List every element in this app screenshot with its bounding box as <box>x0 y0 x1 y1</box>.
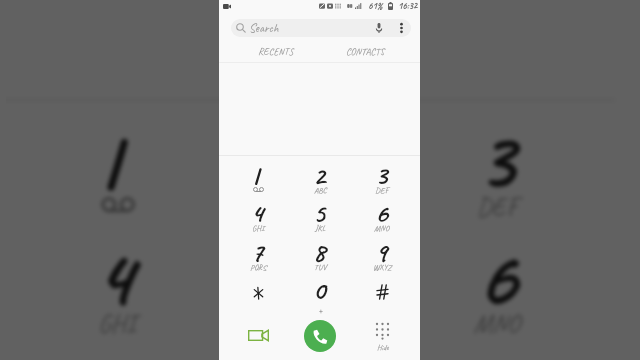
button[interactable]: 8 <box>212 354 403 360</box>
staticText: 16:32 <box>398 0 418 12</box>
button[interactable]: 9 <box>351 238 413 276</box>
button[interactable]: 4 <box>21 234 212 351</box>
staticText: 5 <box>313 196 325 230</box>
staticText: 9 <box>375 235 387 269</box>
button[interactable] <box>227 161 289 199</box>
staticText: PQRS <box>250 262 267 273</box>
button[interactable]: 5 <box>212 234 403 351</box>
staticText: JKL <box>315 223 326 234</box>
staticText: 61% <box>368 0 383 12</box>
button[interactable]: Call <box>289 313 351 360</box>
staticText: GHI <box>252 223 265 234</box>
button[interactable]: 8 <box>289 238 351 276</box>
staticText: 0 <box>313 273 326 307</box>
button[interactable] <box>227 276 289 314</box>
button[interactable]: 7 <box>227 238 289 276</box>
staticText: TUV <box>314 262 327 273</box>
staticText: GHI <box>98 308 138 341</box>
staticText: 6 <box>476 225 516 329</box>
staticText: DEF <box>375 185 389 196</box>
staticText: CONTACTS <box>346 45 385 58</box>
staticText: RECENTS <box>258 45 294 58</box>
button[interactable]: Video call <box>227 313 289 360</box>
staticText: Hide <box>377 342 389 352</box>
staticText: 7 <box>251 235 264 269</box>
staticText: 3 <box>375 158 388 192</box>
staticText: JKL <box>292 308 326 341</box>
button[interactable] <box>351 276 413 314</box>
button[interactable]: Search <box>231 19 411 37</box>
staticText: 4 <box>95 225 135 329</box>
button[interactable]: 4 <box>227 199 289 237</box>
staticText: 8 <box>286 345 326 360</box>
button[interactable]: 9 <box>403 354 593 360</box>
staticText: 5 <box>286 225 323 329</box>
button[interactable]: More options <box>394 21 408 35</box>
staticText: ABC <box>314 185 327 196</box>
staticText: 6 <box>375 196 388 230</box>
staticText: 8 <box>313 235 326 269</box>
button[interactable]: 2 <box>289 161 351 199</box>
button[interactable]: 6 <box>403 234 593 351</box>
staticText: + <box>318 304 323 317</box>
staticText: WXYZ <box>373 262 392 273</box>
button[interactable]: 2 <box>212 117 403 234</box>
button[interactable]: CONTACTS <box>320 41 411 62</box>
staticText: DEF <box>476 191 520 225</box>
staticText: MNO <box>374 223 390 234</box>
button[interactable]: 3 <box>351 161 413 199</box>
staticText: 3 <box>476 108 516 212</box>
button[interactable]: 3 <box>403 117 593 234</box>
button[interactable]: Hide keypad <box>351 313 413 360</box>
staticText: ABC <box>289 191 329 225</box>
staticText: MNO <box>473 308 523 341</box>
button[interactable]: 6 <box>351 199 413 237</box>
staticText: 4 <box>251 196 264 230</box>
button[interactable]: Voice search <box>372 21 386 35</box>
staticText: 2 <box>313 158 326 192</box>
button[interactable]: RECENTS <box>231 41 320 62</box>
staticText: 2 <box>286 108 326 212</box>
button[interactable]: 0 <box>289 276 351 314</box>
button[interactable]: 5 <box>289 199 351 237</box>
staticText: Search <box>249 20 279 36</box>
button[interactable] <box>21 117 212 234</box>
